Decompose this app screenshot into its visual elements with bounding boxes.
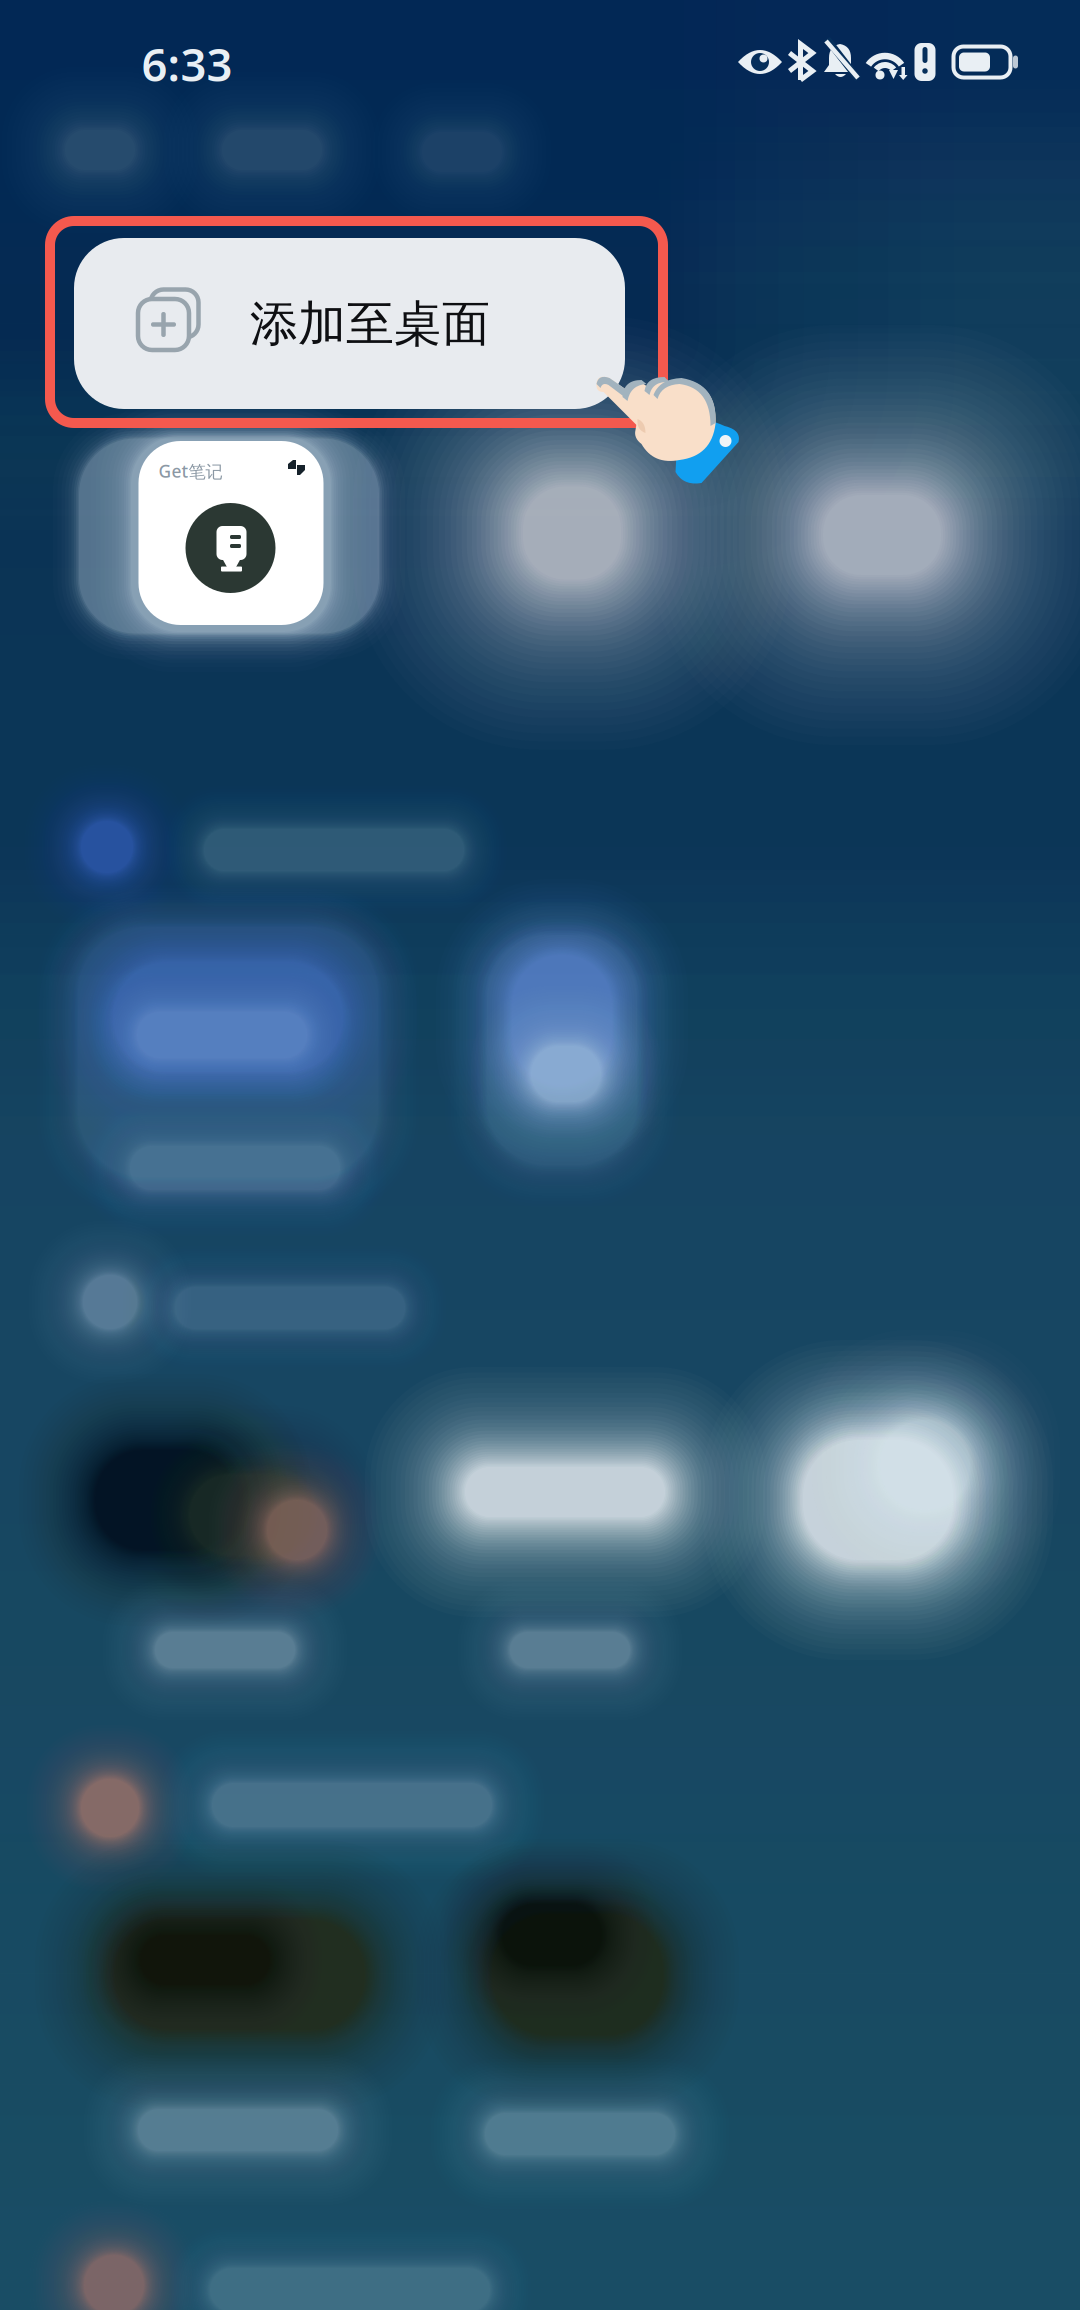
staticText: 添加至桌面 [250,294,490,353]
staticText: 6:33 [141,34,232,94]
staticText: Get笔记 [158,459,222,482]
button[interactable]: 添加至桌面 [74,238,625,409]
